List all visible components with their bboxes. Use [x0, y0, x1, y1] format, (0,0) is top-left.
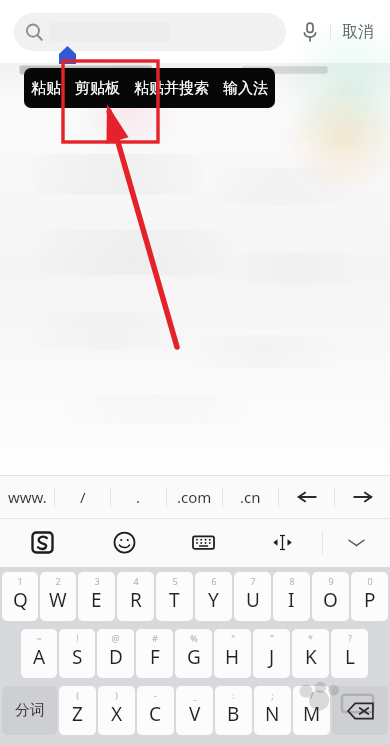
staticText: A [33, 644, 46, 670]
button[interactable]: 7 [234, 572, 271, 621]
button[interactable]: .cn [223, 475, 278, 518]
staticText: .com [177, 487, 212, 507]
button[interactable]: Move cursor left [279, 475, 334, 518]
staticText: J [269, 644, 275, 670]
staticText: E [91, 587, 102, 613]
staticText: Y [208, 587, 219, 613]
button[interactable]: www. [0, 475, 54, 518]
staticText: W [49, 587, 67, 613]
staticText: % [190, 632, 198, 644]
button[interactable]: ( [59, 686, 96, 735]
staticText: I [288, 587, 295, 613]
staticText: ( [76, 689, 79, 701]
button[interactable]: / [293, 686, 330, 735]
button[interactable]: 粘贴 [24, 68, 68, 108]
button[interactable]: 5 [156, 572, 193, 621]
staticText: ! [76, 632, 79, 644]
button[interactable]: 剪贴板 [68, 68, 127, 108]
staticText: 输入法 [223, 79, 268, 98]
staticText: 9 [328, 575, 334, 587]
staticText: / [310, 689, 314, 701]
staticText: X [111, 701, 123, 727]
button[interactable]: 2 [40, 572, 76, 621]
button[interactable]: % [175, 629, 212, 678]
staticText: P [364, 587, 376, 613]
staticText: D [109, 644, 123, 670]
button[interactable]: ? [331, 629, 368, 678]
button[interactable]: Backspace [332, 686, 388, 735]
button[interactable]: 分词 [2, 686, 57, 735]
button[interactable]: 取消 [338, 16, 378, 48]
staticText: @ [111, 632, 120, 644]
staticText: 1 [17, 575, 23, 587]
button[interactable]: 3 [78, 572, 115, 621]
button[interactable]: ~ [21, 629, 57, 678]
staticText: 分词 [15, 701, 45, 720]
button[interactable]: .com [167, 475, 222, 518]
button[interactable]: - [137, 686, 174, 735]
staticText: 7 [250, 575, 256, 587]
button[interactable]: Move cursor right [335, 475, 390, 518]
button[interactable]: @ [97, 629, 134, 678]
button[interactable]: 9 [312, 572, 349, 621]
button[interactable]: ) [98, 686, 135, 735]
staticText: 8 [289, 575, 295, 587]
staticText: T [169, 587, 180, 613]
staticText: M [303, 701, 321, 727]
staticText: ; [271, 689, 274, 701]
staticText: H [225, 644, 240, 670]
button[interactable]: ! [59, 629, 95, 678]
staticText: ” [270, 632, 274, 644]
staticText: 5 [172, 575, 178, 587]
staticText: 0 [367, 575, 373, 587]
button[interactable]: / [55, 475, 110, 518]
staticText: Q [13, 587, 28, 613]
button[interactable]: 6 [195, 572, 232, 621]
button[interactable]: Emoji [84, 518, 164, 567]
staticText: “ [231, 632, 235, 644]
staticText: ~ [36, 632, 42, 644]
button[interactable] [14, 13, 286, 51]
button[interactable]: 8 [273, 572, 310, 621]
button[interactable]: * [292, 629, 329, 678]
staticText: / [80, 487, 86, 507]
button[interactable]: _ [176, 686, 213, 735]
staticText: 剪贴板 [75, 79, 120, 98]
button[interactable]: Voice search [295, 17, 325, 47]
staticText: 2 [55, 575, 61, 587]
button[interactable]: 0 [351, 572, 388, 621]
staticText: - [154, 689, 157, 701]
staticText: U [246, 587, 260, 613]
staticText: ) [115, 689, 118, 701]
button[interactable]: Sogou input method [0, 518, 84, 567]
button[interactable]: 输入法 [216, 68, 275, 108]
staticText: O [323, 587, 338, 613]
staticText: 粘贴 [31, 79, 61, 98]
staticText: 3 [94, 575, 100, 587]
button[interactable]: Move cursor [243, 518, 322, 567]
button[interactable]: ” [253, 629, 290, 678]
staticText: 取消 [342, 22, 374, 42]
staticText: 粘贴并搜索 [134, 79, 209, 98]
button[interactable]: 1 [2, 572, 38, 621]
button[interactable]: Keyboard layout [164, 518, 243, 567]
staticText: F [150, 644, 160, 670]
staticText: N [265, 701, 280, 727]
button[interactable]: ; [254, 686, 291, 735]
button[interactable]: 粘贴并搜索 [127, 68, 216, 108]
staticText: C [149, 701, 162, 727]
staticText: R [130, 587, 142, 613]
button[interactable]: : [215, 686, 252, 735]
staticText: 6 [211, 575, 217, 587]
button[interactable]: Hide keyboard [323, 518, 390, 567]
button[interactable]: . [111, 475, 166, 518]
staticText: S [72, 644, 83, 670]
button[interactable]: # [136, 629, 173, 678]
staticText: .cn [240, 487, 261, 507]
staticText: _ [193, 689, 197, 701]
staticText: L [345, 644, 355, 670]
button[interactable]: “ [214, 629, 251, 678]
staticText: V [189, 701, 201, 727]
button[interactable]: 4 [117, 572, 154, 621]
staticText: G [187, 644, 201, 670]
